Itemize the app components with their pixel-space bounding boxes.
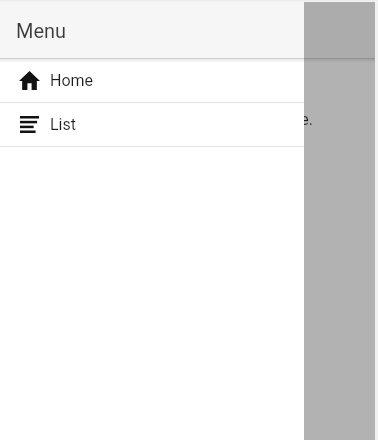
staticText: List — [50, 115, 76, 134]
button[interactable]: Home — [0, 59, 304, 102]
staticText: This is the home page. — [152, 110, 313, 129]
staticText: Home — [50, 71, 94, 90]
staticText: Menu — [16, 19, 67, 42]
button[interactable]: List — [0, 103, 304, 146]
button[interactable]: Close navigation drawer — [0, 2, 375, 440]
